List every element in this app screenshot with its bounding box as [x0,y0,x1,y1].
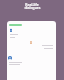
staticText: dialogues [24,5,41,10]
staticText: Real-life [25,2,39,7]
button[interactable] [7,21,56,80]
